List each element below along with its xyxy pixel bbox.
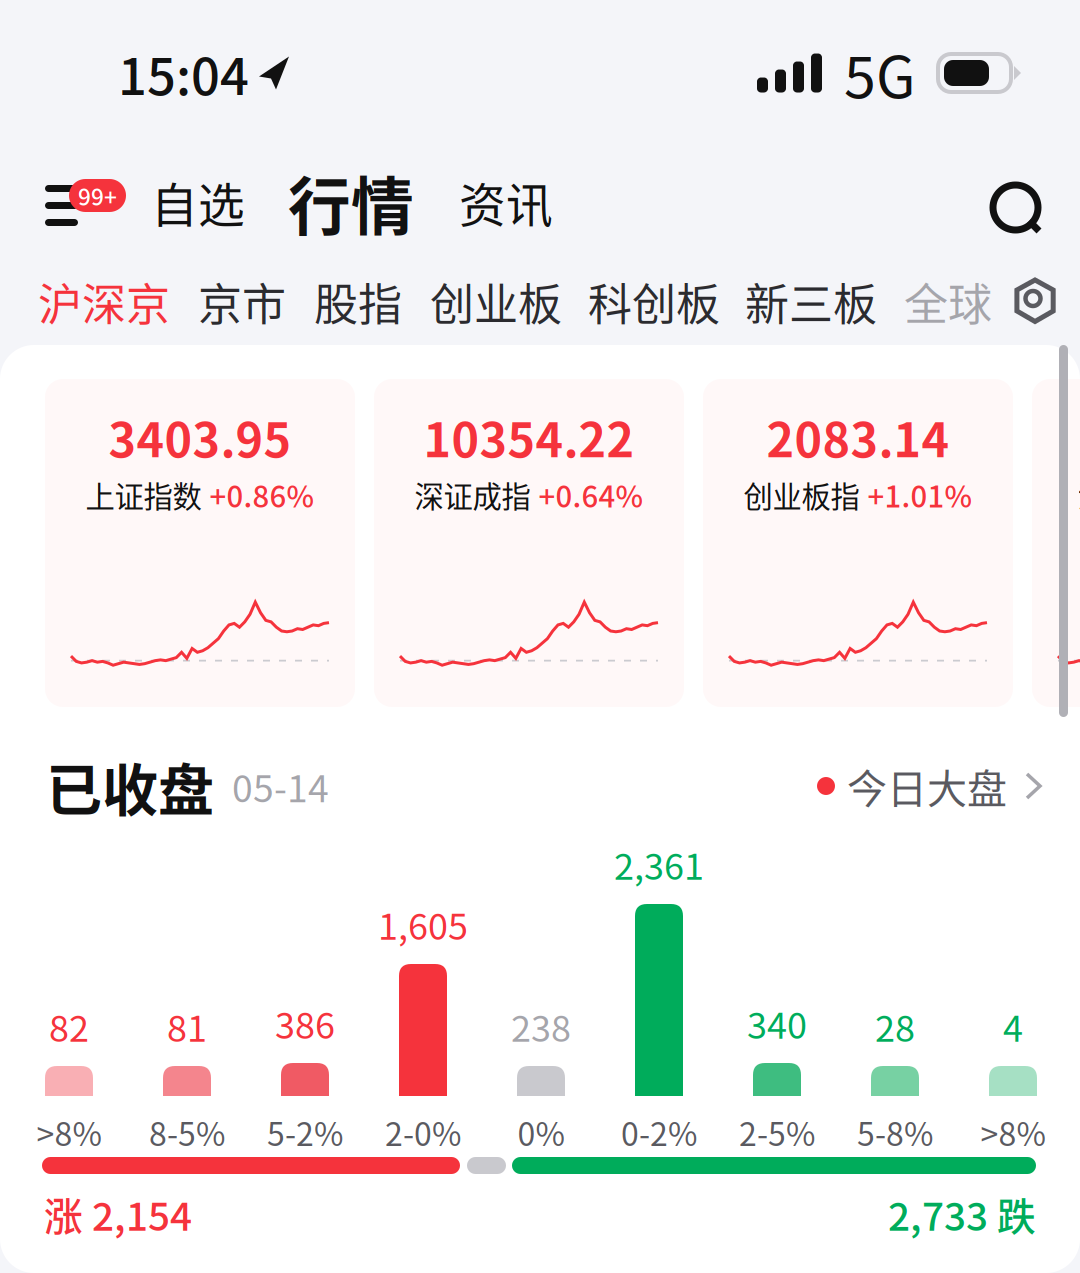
staticText: +1.01%: [867, 474, 972, 516]
staticText: 行情: [288, 157, 414, 247]
staticText: 自选: [151, 168, 245, 236]
button[interactable]: 京市: [198, 270, 286, 333]
staticText: 5-8%: [857, 1109, 933, 1155]
button[interactable]: 2083.14: [703, 379, 1013, 707]
staticText: 8-5%: [149, 1109, 225, 1155]
staticText: 0%: [517, 1109, 564, 1155]
staticText: 2,361: [614, 838, 704, 890]
staticText: 81: [167, 1000, 207, 1052]
button[interactable]: 科创板: [588, 270, 720, 333]
button[interactable]: 新三板: [745, 270, 877, 333]
staticText: >8%: [980, 1109, 1045, 1155]
staticText: 3403.95: [108, 403, 291, 471]
staticText: 99+: [78, 179, 117, 212]
staticText: 05-14: [232, 759, 329, 813]
staticText: 深证成指: [414, 474, 530, 516]
staticText: 新三板: [745, 270, 877, 333]
button[interactable]: 行情: [278, 151, 424, 253]
button[interactable]: 今日大盘: [817, 757, 1042, 815]
staticText: 5G: [844, 31, 916, 114]
button[interactable]: 1234.56: [1032, 379, 1080, 707]
staticText: 2-0%: [385, 1109, 461, 1155]
staticText: 资讯: [459, 168, 553, 236]
button[interactable]: 股指: [314, 270, 402, 333]
staticText: 238: [511, 1000, 571, 1052]
staticText: 2,733 跌: [888, 1186, 1036, 1242]
staticText: 京市: [198, 270, 286, 333]
staticText: 涨 2,154: [44, 1186, 192, 1242]
button[interactable]: 创业板: [430, 270, 562, 333]
button[interactable]: 沪深京: [38, 270, 170, 333]
staticText: 沪深京: [38, 270, 170, 333]
button[interactable]: 自选: [141, 154, 255, 250]
staticText: 沪深300: [1077, 474, 1080, 516]
button[interactable]: Menu: [45, 164, 129, 240]
staticText: +0.64%: [538, 474, 643, 516]
staticText: 2-5%: [739, 1109, 815, 1155]
staticText: 28: [875, 1000, 915, 1052]
staticText: 15:04: [118, 36, 249, 110]
staticText: 4: [1003, 1000, 1023, 1052]
staticText: 82: [49, 1000, 89, 1052]
button[interactable]: 3403.95: [45, 379, 355, 707]
staticText: 2083.14: [766, 403, 949, 471]
staticText: 全球: [904, 270, 992, 333]
staticText: 股指: [314, 270, 402, 333]
staticText: 上证指数: [85, 474, 201, 516]
button[interactable]: Search: [983, 168, 1051, 236]
staticText: 科创板: [588, 270, 720, 333]
staticText: 340: [747, 997, 807, 1049]
button[interactable]: 全球: [904, 270, 992, 333]
staticText: 386: [275, 997, 335, 1049]
staticText: >8%: [36, 1109, 101, 1155]
button[interactable]: Settings: [996, 258, 1080, 345]
staticText: 1,605: [378, 898, 468, 950]
staticText: 0-2%: [621, 1109, 697, 1155]
staticText: 已收盘: [46, 745, 214, 827]
staticText: 5-2%: [267, 1109, 343, 1155]
staticText: 10354.22: [423, 403, 634, 471]
button[interactable]: 10354.22: [374, 379, 684, 707]
staticText: 今日大盘: [847, 757, 1007, 815]
staticText: 创业板: [430, 270, 562, 333]
button[interactable]: 资讯: [449, 154, 563, 250]
staticText: +0.86%: [209, 474, 314, 516]
staticText: 创业板指: [743, 474, 859, 516]
